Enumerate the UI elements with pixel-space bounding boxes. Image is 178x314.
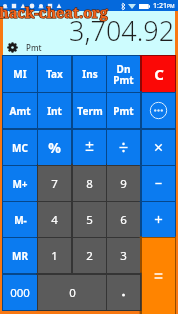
staticText: Ins <box>82 67 98 81</box>
button[interactable]: 3 <box>107 238 140 273</box>
button[interactable]: MC <box>3 130 37 165</box>
staticText: Term <box>77 104 103 118</box>
staticText: Pmt <box>113 104 134 118</box>
button[interactable]: 4 <box>38 202 71 237</box>
button[interactable]: MR <box>3 238 37 273</box>
button[interactable]: % <box>38 130 71 165</box>
button[interactable]: Plus <box>142 202 175 237</box>
staticText: PM <box>167 3 175 10</box>
staticText: 3 <box>120 248 127 264</box>
button[interactable]: 7 <box>38 166 71 201</box>
button[interactable]: Equals <box>142 238 175 314</box>
staticText: Pmt <box>26 42 42 53</box>
staticText: 6 <box>120 212 127 228</box>
staticText: 8 <box>86 176 93 192</box>
button[interactable]: 8 <box>73 166 106 201</box>
button[interactable]: Settings <box>7 42 18 53</box>
button[interactable]: Divide <box>107 130 140 165</box>
button[interactable]: Amt <box>3 93 37 128</box>
staticText: MI <box>13 67 27 81</box>
button[interactable]: 1 <box>38 238 71 273</box>
button[interactable]: More options <box>142 93 175 128</box>
staticText: % <box>48 138 61 157</box>
button[interactable]: Ins <box>73 56 106 92</box>
button[interactable]: Decimal point <box>107 275 140 310</box>
staticText: C <box>154 64 164 84</box>
button[interactable]: Minus <box>142 166 175 201</box>
staticText: 1:21 <box>153 1 167 11</box>
button[interactable]: Multiply <box>142 130 175 165</box>
button[interactable]: Tax <box>38 56 71 92</box>
staticText: Tax <box>46 67 63 81</box>
staticText: 0 <box>69 285 76 301</box>
button[interactable]: MI <box>3 56 37 92</box>
staticText: Amt <box>9 104 31 118</box>
staticText: 4 <box>51 212 58 228</box>
staticText: hack-cheat.org <box>0 2 108 22</box>
button[interactable]: 6 <box>107 202 140 237</box>
button[interactable]: 2 <box>73 238 106 273</box>
button[interactable]: Dn Pmt <box>107 56 140 92</box>
staticText: M+ <box>12 177 28 191</box>
button[interactable]: Plus minus <box>73 130 106 165</box>
button[interactable]: M+ <box>3 166 37 201</box>
button[interactable]: 000 <box>3 275 37 310</box>
button[interactable]: C <box>142 56 175 92</box>
staticText: 5 <box>86 212 93 228</box>
button[interactable]: 0 <box>38 275 106 310</box>
button[interactable]: 5 <box>73 202 106 237</box>
staticText: hack-cheat.org <box>0 2 108 22</box>
staticText: 000 <box>10 285 30 301</box>
staticText: Int <box>47 104 62 118</box>
staticText: Dn Pmt <box>113 62 134 87</box>
staticText: M- <box>14 213 27 227</box>
staticText: 9 <box>120 176 127 192</box>
staticText: 3,704.92 <box>69 12 175 49</box>
button[interactable]: M- <box>3 202 37 237</box>
staticText: MR <box>12 249 28 263</box>
button[interactable]: Term <box>73 93 106 128</box>
staticText: 1 <box>51 248 58 264</box>
button[interactable]: Int <box>38 93 71 128</box>
staticText: 7 <box>51 176 58 192</box>
staticText: 2 <box>86 248 93 264</box>
staticText: MC <box>12 141 28 155</box>
button[interactable]: Pmt <box>107 93 140 128</box>
button[interactable]: 9 <box>107 166 140 201</box>
